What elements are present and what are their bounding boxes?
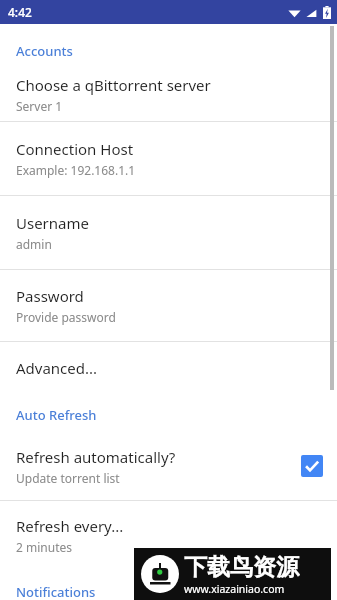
staticText: Auto Refresh [16, 406, 97, 424]
button[interactable]: Choose a qBittorrent server [0, 68, 337, 121]
button[interactable]: Refresh automatically [301, 455, 323, 477]
staticText: Example: 192.168.1.1 [16, 162, 136, 178]
staticText: 下载鸟资源 [184, 553, 299, 582]
staticText: Advanced... [16, 358, 98, 378]
staticText: Refresh automatically? [16, 447, 176, 467]
button[interactable]: Refresh every... [0, 501, 337, 569]
button[interactable]: Username [0, 196, 337, 269]
button[interactable]: Refresh automatically? [0, 432, 337, 500]
staticText: Password [16, 286, 84, 306]
staticText: Provide password [16, 309, 116, 325]
staticText: 2 minutes [16, 539, 72, 555]
staticText: Refresh every... [16, 516, 124, 536]
staticText: Notifications [16, 583, 96, 600]
staticText: Update torrent list [16, 470, 120, 486]
staticText: www.xiazainiao.com [184, 582, 285, 596]
staticText: Connection Host [16, 139, 134, 159]
button[interactable]: Advanced... [0, 342, 337, 394]
staticText: admin [16, 236, 52, 252]
staticText: Server 1 [16, 98, 63, 114]
button[interactable]: Password [0, 270, 337, 341]
staticText: Choose a qBittorrent server [16, 75, 211, 95]
staticText: Accounts [16, 42, 73, 60]
staticText: 4:42 [8, 4, 32, 20]
staticText: Username [16, 213, 89, 233]
button[interactable]: Connection Host [0, 122, 337, 195]
